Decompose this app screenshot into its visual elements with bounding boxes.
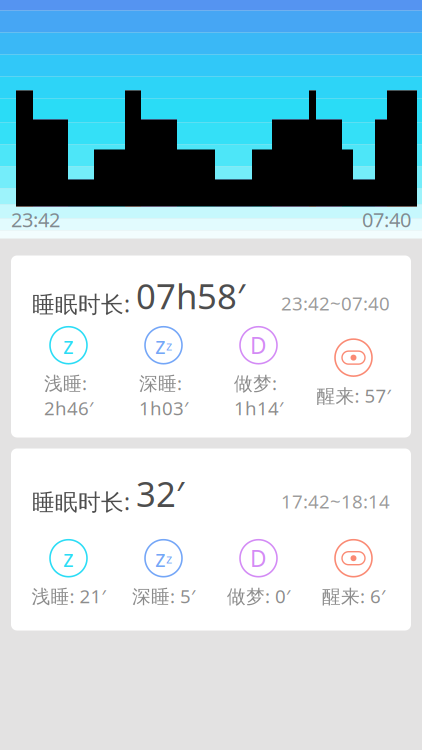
staticText: z	[63, 330, 74, 360]
staticText: 32′	[136, 470, 184, 516]
staticText: z	[155, 543, 166, 573]
button[interactable]: 睡眠时长:	[11, 255, 411, 437]
staticText: D	[250, 543, 267, 573]
staticText: z	[63, 543, 74, 573]
staticText: 浅睡: 21′	[31, 584, 105, 608]
staticText: z	[155, 330, 166, 360]
staticText: 深睡: 5′	[132, 584, 195, 608]
staticText: 07:40	[362, 206, 411, 233]
staticText: 17:42~18:14	[281, 489, 390, 513]
staticText: 07h58′	[136, 273, 245, 319]
staticText: 做梦: 0′	[227, 584, 290, 608]
staticText: z	[166, 336, 172, 354]
staticText: 做梦: 1h14′	[234, 371, 283, 420]
staticText: 23:42~07:40	[281, 291, 390, 316]
staticText: 醒来: 57′	[316, 383, 390, 408]
staticText: 睡眠时长:	[32, 289, 136, 319]
staticText: 23:42	[11, 206, 60, 233]
staticText: 睡眠时长:	[32, 486, 136, 516]
button[interactable]: 睡眠时长:	[11, 448, 411, 630]
staticText: 浅睡: 2h46′	[44, 371, 93, 420]
staticText: 深睡: 1h03′	[139, 371, 188, 420]
staticText: 醒来: 6′	[322, 584, 385, 608]
staticText: D	[250, 330, 267, 360]
staticText: z	[166, 549, 172, 567]
